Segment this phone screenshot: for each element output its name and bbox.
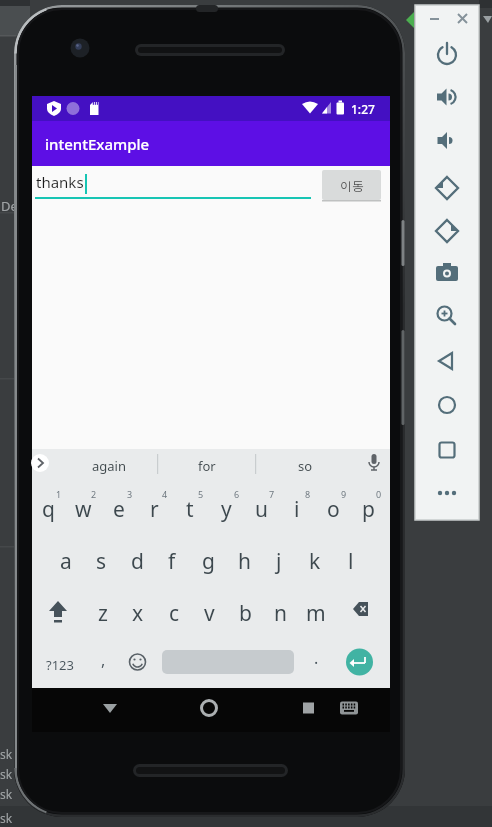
staticText: j — [276, 547, 282, 576]
button[interactable] — [341, 636, 378, 688]
staticText: a — [60, 547, 72, 576]
button[interactable] — [36, 636, 84, 688]
staticText: ?123 — [46, 656, 74, 674]
staticText: t — [186, 495, 194, 524]
staticText: u — [255, 495, 268, 524]
button[interactable] — [32, 166, 312, 204]
button[interactable] — [431, 434, 463, 466]
button[interactable] — [341, 584, 377, 636]
button[interactable] — [350, 480, 385, 532]
button[interactable] — [279, 480, 314, 532]
staticText: d — [131, 547, 144, 576]
staticText: 0 — [376, 488, 382, 500]
button[interactable] — [431, 477, 463, 509]
staticText: De — [1, 197, 18, 215]
button[interactable] — [85, 584, 120, 636]
button[interactable] — [40, 584, 76, 636]
staticText: , — [101, 649, 106, 671]
staticText: p — [362, 495, 375, 524]
button[interactable] — [431, 124, 463, 156]
button[interactable] — [83, 532, 118, 584]
button[interactable] — [92, 694, 128, 730]
button[interactable] — [120, 636, 155, 688]
button[interactable] — [227, 584, 262, 636]
staticText: 6 — [234, 488, 240, 500]
button[interactable] — [208, 480, 243, 532]
staticText: y — [221, 495, 232, 524]
button[interactable] — [172, 480, 207, 532]
button[interactable] — [333, 532, 368, 584]
staticText: 이동 — [340, 178, 364, 193]
button[interactable] — [162, 636, 294, 688]
staticText: 1 — [56, 488, 62, 500]
button[interactable] — [431, 81, 463, 113]
staticText: 8 — [305, 488, 311, 500]
staticText: g — [202, 547, 215, 576]
button[interactable]: 이동 — [322, 170, 381, 200]
staticText: z — [98, 599, 108, 628]
button[interactable] — [24, 447, 56, 479]
staticText: 4 — [162, 488, 168, 500]
button[interactable] — [243, 480, 278, 532]
staticText: v — [204, 599, 215, 628]
staticText: 7 — [269, 488, 275, 500]
staticText: sk — [0, 810, 13, 826]
button[interactable] — [452, 6, 470, 24]
button[interactable] — [154, 532, 189, 584]
button[interactable] — [119, 532, 154, 584]
staticText: 2 — [91, 488, 97, 500]
staticText: k — [309, 547, 321, 576]
button[interactable] — [90, 636, 116, 688]
button[interactable] — [136, 480, 171, 532]
staticText: intentExample — [45, 134, 150, 154]
button[interactable] — [315, 480, 350, 532]
staticText: i — [294, 495, 300, 524]
staticText: 1:27 — [351, 101, 375, 117]
button[interactable] — [358, 447, 390, 479]
button[interactable] — [297, 532, 332, 584]
button[interactable] — [431, 300, 463, 332]
staticText: 5 — [198, 488, 204, 500]
button[interactable] — [262, 584, 297, 636]
staticText: f — [168, 547, 176, 576]
button[interactable] — [303, 636, 329, 688]
staticText: w — [75, 495, 92, 524]
button[interactable] — [175, 449, 239, 480]
button[interactable] — [290, 694, 326, 730]
button[interactable] — [190, 532, 225, 584]
staticText: sk — [0, 766, 13, 782]
button[interactable] — [431, 389, 463, 421]
button[interactable] — [337, 697, 361, 727]
staticText: sk — [0, 746, 13, 762]
button[interactable] — [48, 532, 83, 584]
button[interactable] — [424, 6, 442, 24]
button[interactable] — [261, 532, 296, 584]
staticText: n — [274, 599, 287, 628]
staticText: e — [113, 495, 125, 524]
button[interactable] — [191, 584, 226, 636]
staticText: thanks — [36, 172, 84, 192]
staticText: . — [314, 647, 319, 669]
button[interactable] — [431, 39, 463, 71]
button[interactable] — [30, 480, 65, 532]
staticText: m — [306, 599, 326, 628]
staticText: q — [42, 495, 55, 524]
staticText: again — [92, 457, 126, 475]
button[interactable] — [431, 212, 463, 244]
button[interactable] — [273, 449, 337, 480]
staticText: sk — [0, 786, 13, 802]
button[interactable] — [156, 584, 191, 636]
button[interactable] — [120, 584, 155, 636]
button[interactable] — [298, 584, 333, 636]
button[interactable] — [65, 480, 100, 532]
button[interactable] — [191, 694, 227, 730]
button[interactable] — [101, 480, 136, 532]
staticText: 3 — [127, 488, 133, 500]
staticText: so — [298, 457, 313, 475]
staticText: 9 — [341, 488, 347, 500]
button[interactable] — [226, 532, 261, 584]
button[interactable] — [431, 256, 463, 288]
button[interactable] — [431, 169, 463, 201]
button[interactable] — [431, 345, 463, 377]
button[interactable] — [77, 449, 141, 480]
